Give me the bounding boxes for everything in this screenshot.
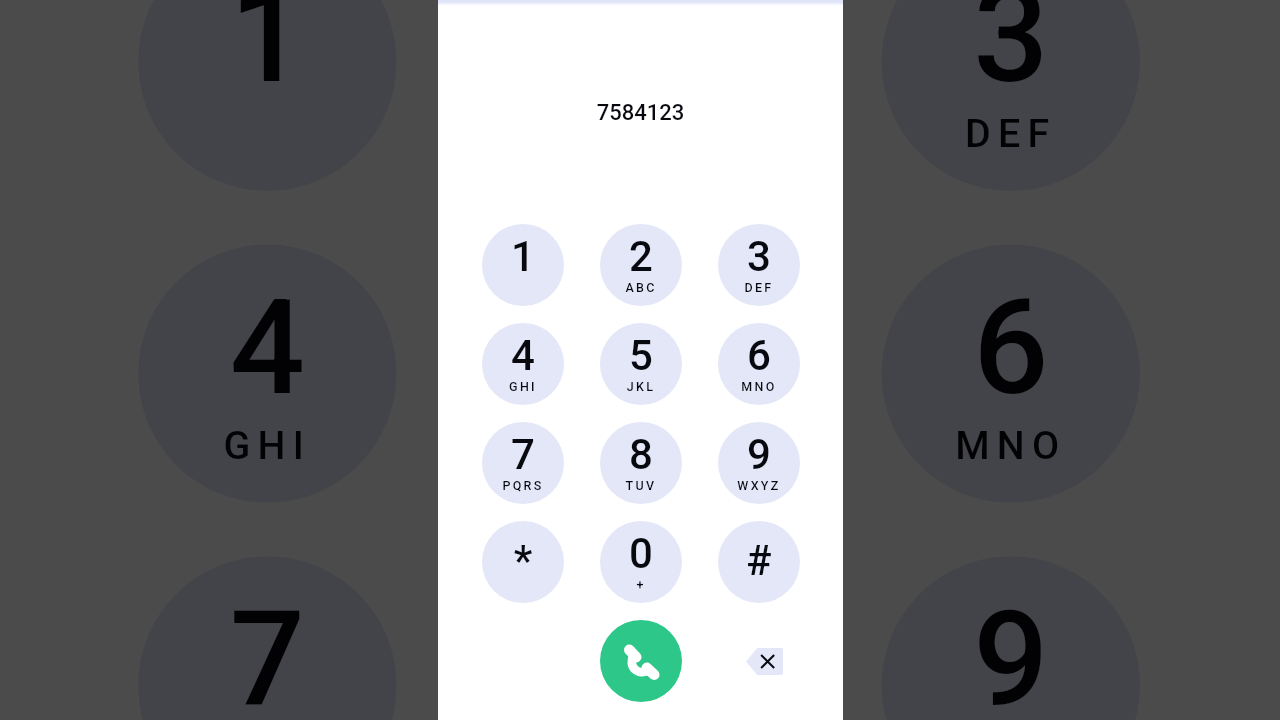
staticText: 8 xyxy=(600,430,682,479)
button[interactable]: 5 xyxy=(600,323,682,405)
staticText: 4 xyxy=(138,270,396,424)
staticText xyxy=(718,577,800,592)
staticText: 0 xyxy=(600,529,682,578)
staticText: 9 xyxy=(882,581,1140,720)
button[interactable]: 0 xyxy=(600,521,682,603)
staticText: + xyxy=(600,577,682,592)
staticText: 7 xyxy=(138,581,396,720)
staticText: MNO xyxy=(718,379,800,394)
button[interactable]: 3 xyxy=(718,224,800,306)
staticText: 9 xyxy=(718,430,800,479)
staticText: 2 xyxy=(600,232,682,281)
staticText: 7 xyxy=(482,430,564,479)
staticText xyxy=(482,577,564,592)
staticText xyxy=(138,109,396,156)
staticText: DEF xyxy=(718,280,800,295)
staticText: 6 xyxy=(718,331,800,380)
staticText: ABC xyxy=(510,109,768,156)
staticText: 6 xyxy=(882,270,1140,424)
staticText: 5 xyxy=(600,331,682,380)
staticText: 4 xyxy=(482,331,564,380)
staticText: 7584123 xyxy=(438,100,843,126)
staticText: 8 xyxy=(510,581,768,720)
staticText: JKL xyxy=(600,379,682,394)
button[interactable]: 9 xyxy=(718,422,800,504)
button[interactable]: 2 xyxy=(600,224,682,306)
staticText: GHI xyxy=(482,379,564,394)
button[interactable]: 1 xyxy=(482,224,564,306)
button[interactable]: # xyxy=(718,521,800,603)
staticText: MNO xyxy=(882,421,1140,468)
button[interactable]: 4 xyxy=(482,323,564,405)
staticText: 2 xyxy=(510,0,768,112)
staticText: # xyxy=(718,536,800,585)
staticText: WXYZ xyxy=(718,478,800,493)
button[interactable]: 7 xyxy=(482,422,564,504)
staticText: DEF xyxy=(882,109,1140,156)
button[interactable]: Call xyxy=(600,620,682,702)
staticText xyxy=(482,280,564,295)
staticText: * xyxy=(482,536,564,585)
staticText: 5 xyxy=(510,270,768,424)
button[interactable]: Backspace xyxy=(738,635,790,687)
staticText: 1 xyxy=(138,0,396,112)
button[interactable]: * xyxy=(482,521,564,603)
staticText: JKL xyxy=(510,421,768,468)
staticText: TUV xyxy=(600,478,682,493)
button[interactable]: 8 xyxy=(600,422,682,504)
staticText: PQRS xyxy=(482,478,564,493)
staticText: 3 xyxy=(882,0,1140,112)
staticText: GHI xyxy=(138,421,396,468)
button[interactable]: 6 xyxy=(718,323,800,405)
staticText: 3 xyxy=(718,232,800,281)
staticText: ABC xyxy=(600,280,682,295)
staticText: 1 xyxy=(482,232,564,281)
